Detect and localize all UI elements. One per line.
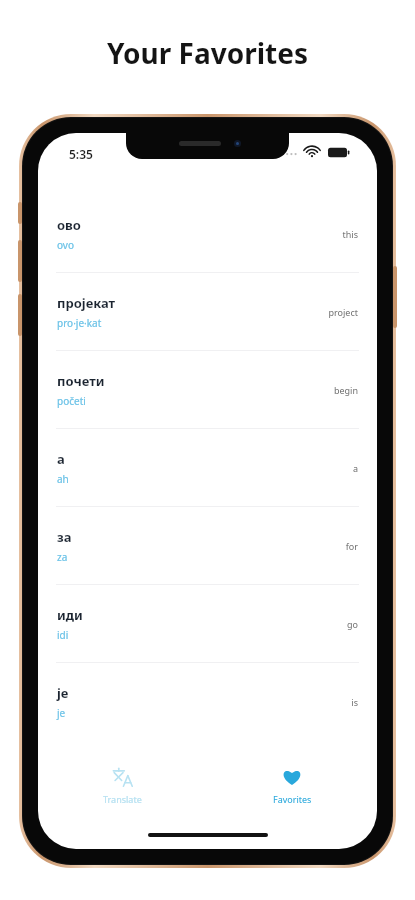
staticText: иди <box>57 606 83 624</box>
staticText: ah <box>57 472 69 486</box>
staticText: begin <box>333 384 358 396</box>
staticText: idi <box>57 628 69 642</box>
button[interactable]: је <box>38 663 377 740</box>
staticText: Translate <box>103 793 142 805</box>
staticText: za <box>57 550 68 564</box>
staticText: a <box>352 462 358 474</box>
staticText: is <box>351 696 358 708</box>
staticText: 5:35 <box>69 146 93 162</box>
staticText: почети <box>57 372 105 390</box>
staticText: project <box>328 306 358 318</box>
button[interactable]: пројекат <box>38 273 377 350</box>
staticText: početi <box>57 394 86 408</box>
staticText: ovo <box>57 238 74 252</box>
button[interactable]: иди <box>38 585 377 662</box>
staticText: пројекат <box>57 294 116 312</box>
button[interactable]: почети <box>38 351 377 428</box>
staticText: ово <box>57 216 81 234</box>
staticText: go <box>347 618 358 630</box>
button[interactable]: ово <box>38 195 377 272</box>
staticText: за <box>57 528 72 546</box>
staticText: this <box>342 228 358 240</box>
staticText: а <box>57 450 65 468</box>
staticText: Favorites <box>273 793 312 805</box>
button[interactable]: Translate <box>38 759 207 811</box>
staticText: pro·je·kat <box>57 316 102 330</box>
staticText: је <box>57 684 69 702</box>
staticText: for <box>345 540 358 552</box>
button[interactable]: Favorites <box>207 759 377 811</box>
staticText: je <box>57 706 66 720</box>
staticText: Your Favorites <box>0 34 415 72</box>
button[interactable]: а <box>38 429 377 506</box>
button[interactable]: за <box>38 507 377 584</box>
